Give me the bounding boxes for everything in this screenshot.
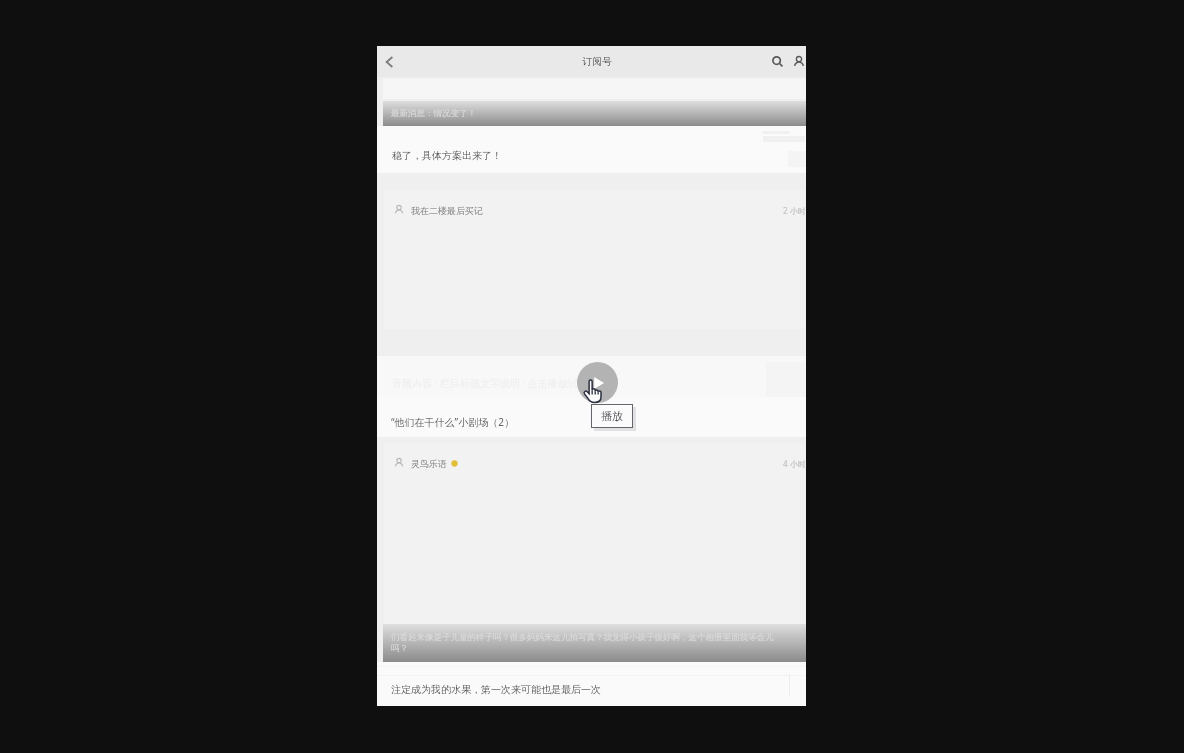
staticText: 我在二楼最后买记 bbox=[411, 205, 483, 216]
button[interactable]: Profile bbox=[787, 46, 811, 77]
button[interactable]: 们看起来像是子儿童的样子吗？很多妈妈来这儿拍写真？我觉得小孩子很好啊，这个相册里… bbox=[383, 624, 806, 662]
staticText: 4 小时 bbox=[783, 458, 806, 469]
button[interactable]: 稳了，具体方案出来了！ bbox=[377, 126, 806, 173]
button[interactable]: “他们在干什么”小剧场（2） bbox=[377, 397, 806, 437]
button[interactable]: Play bbox=[577, 362, 618, 403]
staticText: 最新消息：情况变了！ bbox=[391, 108, 476, 119]
button[interactable]: Back bbox=[377, 46, 401, 77]
staticText: 注定成为我的水果，第一次来可能也是最后一次 bbox=[391, 683, 601, 696]
button[interactable]: 最新消息：情况变了！ bbox=[383, 101, 806, 126]
staticText: 音频内容 · 栏目标题文字说明 · 点击播放试听 bbox=[392, 376, 588, 390]
staticText: 2 小时 bbox=[783, 205, 806, 216]
staticText: 们看起来像是子儿童的样子吗？很多妈妈来这儿拍写真？我觉得小孩子很好啊，这个相册里… bbox=[391, 632, 774, 643]
button[interactable]: 注定成为我的水果，第一次来可能也是最后一次 bbox=[377, 662, 806, 706]
button[interactable]: Search bbox=[765, 46, 789, 77]
staticText: 吗？ bbox=[391, 643, 408, 654]
staticText: 订阅号 bbox=[582, 55, 612, 68]
staticText: 播放 bbox=[601, 409, 623, 423]
staticText: 稳了，具体方案出来了！ bbox=[392, 149, 502, 162]
staticText: “他们在干什么”小剧场（2） bbox=[391, 415, 514, 429]
staticText: 灵鸟乐语 bbox=[411, 458, 447, 469]
